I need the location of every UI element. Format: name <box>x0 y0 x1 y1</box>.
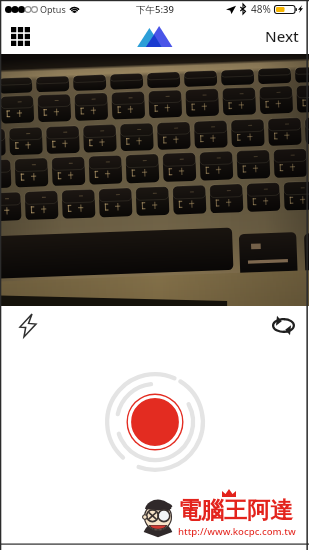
button[interactable]: Gallery <box>3 19 37 53</box>
staticText: 電腦王阿達 <box>178 496 293 525</box>
button[interactable]: Flash <box>11 308 45 342</box>
staticText: http://www.kocpc.com.tw <box>178 525 296 538</box>
button[interactable]: Switch camera <box>266 308 300 342</box>
button[interactable]: Shutter <box>105 372 205 472</box>
staticText: Optus <box>40 3 66 15</box>
staticText: Next <box>265 26 299 46</box>
staticText: 48% <box>251 2 271 16</box>
staticText: 下午5:39 <box>136 3 174 16</box>
button[interactable]: Next <box>265 26 299 46</box>
